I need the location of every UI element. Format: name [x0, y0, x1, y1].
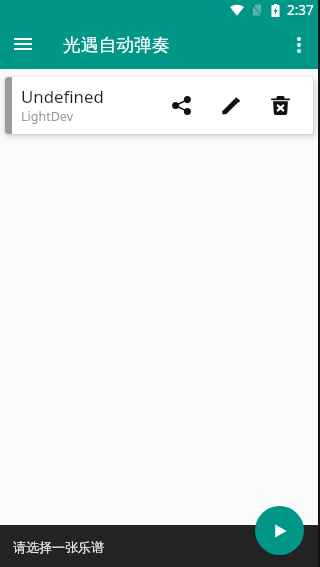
staticText: Undefined: [21, 85, 104, 108]
button[interactable]: Share: [164, 88, 199, 123]
button[interactable]: Delete: [263, 88, 298, 123]
staticText: 光遇自动弹奏: [63, 34, 170, 56]
staticText: 2:37: [287, 1, 314, 19]
staticText: LightDev: [21, 108, 73, 125]
staticText: 请选择一张乐谱: [13, 539, 104, 555]
button[interactable]: Undefined: [5, 77, 313, 134]
button[interactable]: Edit: [214, 88, 249, 123]
button[interactable]: 请选择一张乐谱: [0, 525, 320, 567]
button[interactable]: Play: [255, 506, 304, 555]
button[interactable]: More options: [282, 28, 316, 62]
button[interactable]: Menu: [6, 28, 40, 62]
